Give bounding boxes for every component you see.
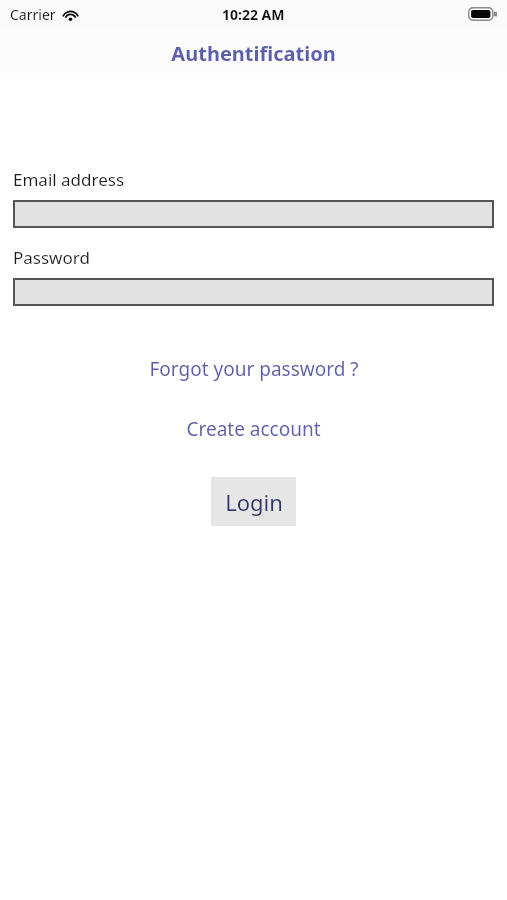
other: Battery full (468, 7, 497, 21)
staticText: Authentification (171, 40, 336, 67)
button[interactable]: Forgot your password ? (141, 353, 367, 385)
staticText: Forgot your password ? (149, 356, 359, 382)
staticText: Create account (186, 416, 321, 442)
staticText: Login (225, 487, 283, 517)
button[interactable]: Create account (178, 413, 329, 445)
button[interactable] (13, 200, 494, 228)
button[interactable] (13, 278, 494, 306)
button[interactable]: Login (211, 477, 296, 526)
staticText: 10:22 AM (222, 5, 285, 24)
staticText: Carrier (10, 5, 56, 24)
staticText: Password (13, 246, 90, 269)
other: Wi-Fi signal (62, 8, 79, 21)
staticText: Email address (13, 168, 125, 191)
